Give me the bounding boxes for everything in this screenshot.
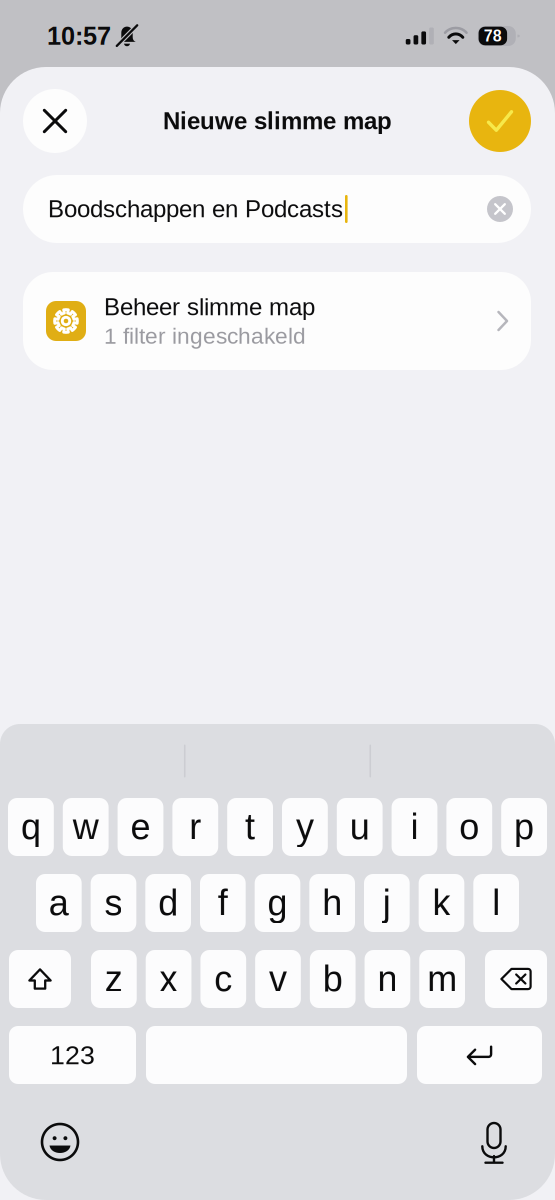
- staticText: s: [104, 883, 122, 923]
- staticText: h: [322, 883, 342, 923]
- button[interactable]: w: [63, 798, 109, 856]
- button[interactable]: Verwijder: [485, 950, 547, 1008]
- staticText: 1 filter ingeschakeld: [104, 323, 306, 348]
- staticText: z: [105, 959, 123, 999]
- button[interactable]: l: [473, 874, 519, 932]
- staticText: 78: [484, 27, 502, 45]
- staticText: Nieuwe slimme map: [163, 108, 392, 134]
- staticText: d: [158, 883, 178, 923]
- button[interactable]: r: [172, 798, 218, 856]
- button[interactable]: m: [419, 950, 465, 1008]
- staticText: r: [189, 807, 201, 847]
- staticText: w: [73, 807, 99, 847]
- staticText: e: [130, 807, 150, 847]
- button[interactable]: g: [255, 874, 300, 932]
- staticText: v: [269, 959, 287, 999]
- button[interactable]: Dicteren: [470, 1118, 518, 1166]
- button[interactable]: a: [36, 874, 82, 932]
- button[interactable]: Return: [417, 1026, 542, 1084]
- button[interactable]: Bewaar: [469, 90, 531, 152]
- staticText: o: [459, 807, 479, 847]
- button[interactable]: v: [255, 950, 301, 1008]
- staticText: m: [427, 959, 457, 999]
- button[interactable]: o: [446, 798, 492, 856]
- button[interactable]: i: [392, 798, 437, 856]
- staticText: q: [21, 807, 41, 847]
- staticText: a: [49, 883, 69, 923]
- button[interactable]: x: [146, 950, 191, 1008]
- button[interactable]: d: [145, 874, 191, 932]
- button[interactable]: Beheer slimme map: [0, 272, 555, 370]
- button[interactable]: t: [227, 798, 273, 856]
- button[interactable]: Wis tekst: [482, 191, 518, 227]
- button[interactable]: k: [419, 874, 464, 932]
- staticText: y: [296, 807, 314, 847]
- button[interactable]: e: [118, 798, 163, 856]
- staticText: u: [350, 807, 370, 847]
- button[interactable]: f: [200, 874, 246, 932]
- staticText: Beheer slimme map: [104, 293, 315, 320]
- staticText: c: [214, 959, 232, 999]
- staticText: n: [377, 959, 397, 999]
- staticText: i: [410, 807, 418, 847]
- staticText: p: [514, 807, 534, 847]
- staticText: j: [383, 883, 391, 923]
- button[interactable]: s: [91, 874, 136, 932]
- button[interactable]: Sluit: [23, 89, 87, 153]
- button[interactable]: c: [200, 950, 246, 1008]
- button[interactable]: h: [309, 874, 355, 932]
- button[interactable]: n: [365, 950, 410, 1008]
- button[interactable]: y: [282, 798, 328, 856]
- button[interactable]: q: [8, 798, 54, 856]
- staticText: f: [218, 883, 228, 923]
- staticText: k: [432, 883, 450, 923]
- staticText: x: [160, 959, 178, 999]
- button[interactable]: u: [337, 798, 383, 856]
- staticText: 10:57: [47, 22, 111, 50]
- staticText: l: [492, 883, 500, 923]
- staticText: g: [267, 883, 287, 923]
- button[interactable]: Shift: [9, 950, 71, 1008]
- button[interactable]: j: [364, 874, 410, 932]
- staticText: t: [245, 807, 255, 847]
- button[interactable]: z: [91, 950, 137, 1008]
- button[interactable]: p: [501, 798, 547, 856]
- button[interactable]: 123: [9, 1026, 136, 1084]
- button[interactable]: Emoji: [36, 1118, 84, 1166]
- staticText: 123: [50, 1040, 95, 1070]
- button[interactable]: b: [310, 950, 356, 1008]
- staticText: Boodschappen en Podcasts: [48, 196, 343, 222]
- staticText: b: [323, 959, 343, 999]
